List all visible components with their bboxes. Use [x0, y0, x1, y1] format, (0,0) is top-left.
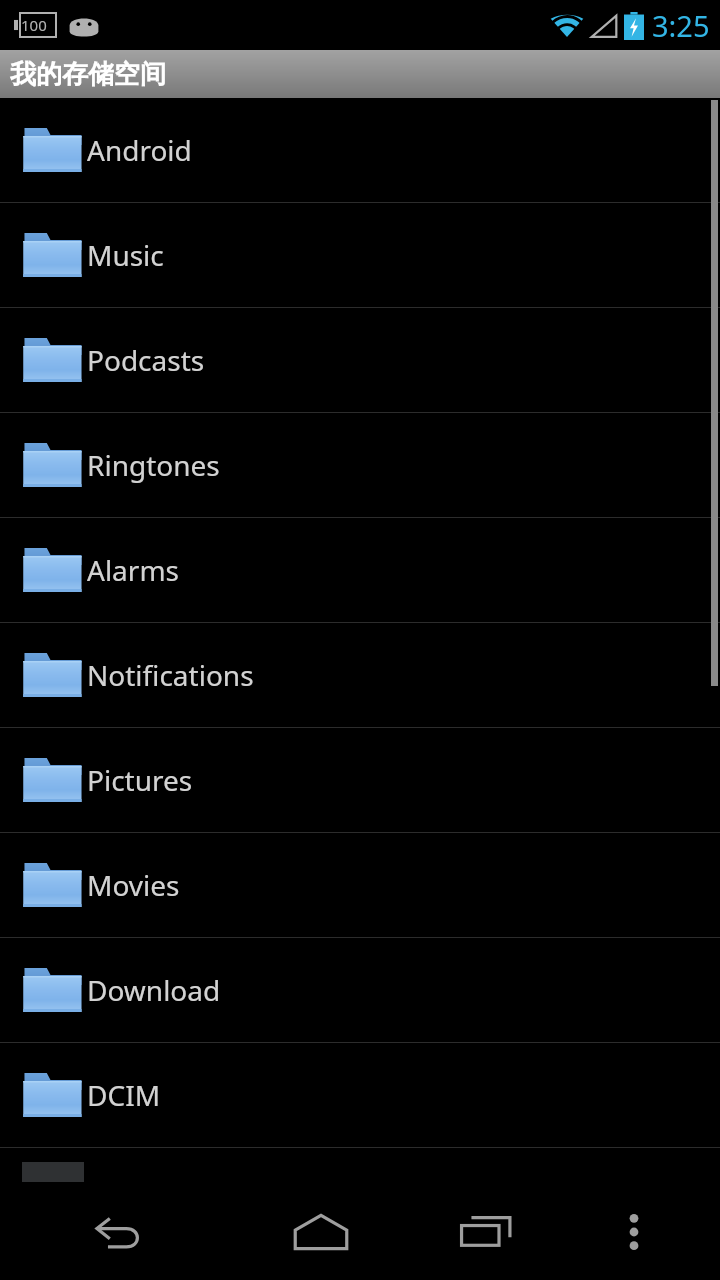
staticText: 我的存储空间 [10, 58, 166, 91]
button[interactable]: Download [0, 938, 720, 1042]
staticText: 3:25 [652, 6, 710, 45]
staticText: Notifications [87, 656, 254, 694]
button[interactable]: Alarms [0, 518, 720, 622]
button[interactable]: Pictures [0, 728, 720, 832]
staticText: Podcasts [87, 341, 205, 379]
button[interactable]: Recent apps [403, 1184, 568, 1280]
staticText: 100 [21, 15, 47, 35]
button[interactable]: Home [238, 1184, 403, 1280]
button[interactable]: More options [568, 1184, 700, 1280]
button[interactable]: Ringtones [0, 413, 720, 517]
staticText: Alarms [87, 551, 179, 589]
button[interactable]: DCIM [0, 1043, 720, 1147]
staticText: Android [87, 131, 192, 169]
button[interactable]: Music [0, 203, 720, 307]
button[interactable]: Notifications [0, 623, 720, 727]
staticText: Music [87, 236, 164, 274]
staticText: Download [87, 971, 221, 1009]
staticText: Movies [87, 866, 180, 904]
button[interactable]: Podcasts [0, 308, 720, 412]
staticText: Ringtones [87, 446, 220, 484]
staticText: Pictures [87, 761, 193, 799]
button[interactable]: Android [0, 98, 720, 202]
staticText: DCIM [87, 1076, 161, 1114]
button[interactable]: Movies [0, 833, 720, 937]
button[interactable]: Back [0, 1184, 238, 1280]
